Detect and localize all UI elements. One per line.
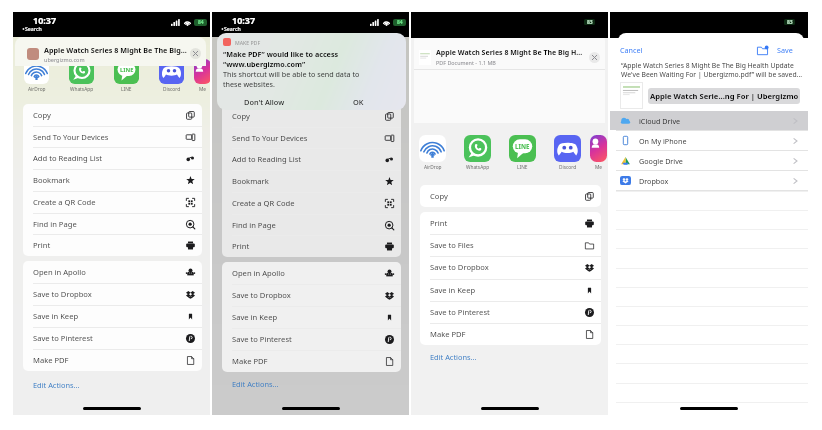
button[interactable]: Create a QR Code (222, 192, 401, 214)
staticText: Apple Watch Serie...ng For | Ubergizmo (650, 91, 799, 101)
button[interactable]: Bookmark (23, 169, 202, 191)
button[interactable]: Add to Reading List (23, 147, 202, 169)
button[interactable]: Copy (23, 104, 202, 126)
staticText: Print (232, 241, 250, 251)
staticText: Don't Allow (244, 97, 285, 107)
staticText: WhatsApp (70, 86, 94, 93)
button[interactable]: Save to Pinterest (23, 327, 202, 349)
button[interactable]: Save in Keep (222, 306, 401, 328)
staticText: Find in Page (232, 220, 276, 230)
button[interactable]: Me (194, 59, 210, 93)
staticText: 83 (587, 19, 593, 25)
staticText: Save in Keep (33, 311, 79, 321)
button[interactable]: Cancel (620, 45, 643, 55)
button[interactable]: Close (589, 52, 600, 63)
button[interactable]: Save in Keep (420, 279, 601, 301)
button[interactable]: WhatsApp (59, 59, 104, 93)
button[interactable]: New Folder (757, 45, 768, 56)
button[interactable]: Save to Dropbox (23, 283, 202, 305)
button[interactable]: Make PDF (23, 349, 202, 371)
button[interactable]: Save to Files (420, 234, 601, 256)
staticText: Add to Reading List (33, 153, 103, 163)
button[interactable]: Bookmark (222, 170, 401, 192)
staticText: LINE (515, 142, 530, 150)
button[interactable]: LINE (500, 135, 545, 171)
button[interactable]: Print (222, 235, 401, 257)
staticText: Search (25, 25, 42, 32)
button[interactable]: Open in Apollo (222, 262, 401, 284)
button[interactable]: Save to Pinterest (222, 328, 401, 350)
staticText: Send To Your Devices (33, 132, 109, 142)
staticText: “www.ubergizmo.com” (223, 59, 306, 69)
button[interactable]: Save to Dropbox (222, 284, 401, 306)
button[interactable]: Save to Pinterest (420, 301, 601, 323)
staticText: LINE (517, 164, 528, 171)
staticText: We've Been Waiting For | Ubergizmo.pdf” … (621, 70, 803, 79)
staticText: ubergizmo.com (44, 56, 85, 63)
button[interactable]: Add to Reading List (222, 148, 401, 170)
staticText: LINE (121, 86, 132, 93)
staticText: Make PDF (430, 329, 466, 339)
button[interactable]: Find in Page (222, 214, 401, 236)
button[interactable]: AirDrop (411, 135, 455, 171)
button[interactable]: Create a QR Code (23, 191, 202, 213)
button[interactable]: Discord (545, 135, 590, 171)
button[interactable]: Apple Watch Serie...ng For | Ubergizmo (648, 88, 800, 104)
button[interactable]: Find in Page (23, 213, 202, 235)
button[interactable]: Dropbox (610, 171, 808, 190)
staticText: Open in Apollo (33, 267, 86, 277)
staticText: Bookmark (33, 175, 70, 185)
staticText: LINE (120, 66, 134, 74)
button[interactable]: Copy (420, 185, 601, 207)
button[interactable]: Save (777, 45, 793, 55)
button[interactable]: Copy (222, 105, 401, 127)
staticText: Create a QR Code (232, 198, 295, 208)
button[interactable]: Don't Allow (217, 94, 311, 110)
staticText: MAKE PDF (235, 39, 261, 46)
button[interactable]: Print (23, 234, 202, 256)
staticText: AirDrop (28, 86, 46, 93)
button[interactable]: Edit Actions... (232, 379, 279, 389)
button[interactable]: Google Drive (610, 151, 808, 170)
staticText: AirDrop (424, 164, 442, 171)
staticText: Make PDF (232, 356, 268, 366)
staticText: Save to Pinterest (33, 333, 93, 343)
staticText: Send To Your Devices (232, 133, 308, 143)
button[interactable]: iCloud Drive (610, 111, 808, 130)
button[interactable]: Make PDF (420, 323, 601, 345)
button[interactable]: Send To Your Devices (222, 127, 401, 149)
staticText: Me (199, 86, 207, 93)
button[interactable]: LINE (104, 59, 149, 93)
button[interactable]: On My iPhone (610, 131, 808, 150)
button[interactable]: Send To Your Devices (23, 126, 202, 148)
button[interactable]: Edit Actions... (33, 380, 80, 390)
button[interactable]: Discord (149, 59, 194, 93)
staticText: “Make PDF” would like to access (223, 49, 339, 59)
button[interactable]: WhatsApp (455, 135, 500, 171)
staticText: Apple Watch Series 8 Might Be The Big... (44, 45, 187, 55)
staticText: This shortcut will be able to send data … (223, 69, 360, 79)
staticText: Bookmark (232, 176, 269, 186)
button[interactable]: Edit Actions... (430, 352, 477, 362)
button[interactable]: Close (190, 48, 201, 59)
button[interactable]: AirDrop (14, 59, 59, 93)
staticText: Search (224, 25, 241, 32)
button[interactable]: OK (311, 94, 406, 110)
staticText: Copy (33, 110, 51, 120)
staticText: Save in Keep (232, 312, 278, 322)
button[interactable]: Save in Keep (23, 305, 202, 327)
button[interactable]: Make PDF (222, 350, 401, 372)
staticText: 84 (397, 19, 403, 26)
staticText: Discord (559, 164, 577, 171)
button[interactable]: Print (420, 212, 601, 234)
staticText: Make PDF (33, 355, 69, 365)
staticText: Print (33, 240, 51, 250)
staticText: these websites. (223, 79, 275, 89)
staticText: Copy (430, 191, 448, 201)
button[interactable]: Me (590, 135, 607, 171)
button[interactable]: Open in Apollo (23, 261, 202, 283)
staticText: On My iPhone (639, 136, 687, 146)
staticText: OK (353, 97, 364, 107)
staticText: iCloud Drive (639, 116, 681, 126)
button[interactable]: Save to Dropbox (420, 256, 601, 278)
